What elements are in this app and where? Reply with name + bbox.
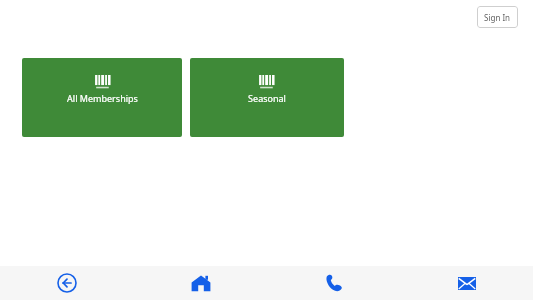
button[interactable]: Seasonal — [190, 58, 344, 137]
button[interactable]: Sign In — [477, 6, 518, 28]
button[interactable]: Call — [267, 266, 400, 300]
button[interactable]: Back — [0, 266, 134, 300]
staticText: Seasonal — [248, 92, 286, 104]
button[interactable]: Mail — [400, 266, 533, 300]
staticText: Sign In — [484, 12, 511, 23]
staticText: All Memberships — [67, 92, 138, 104]
button[interactable]: All Memberships — [22, 58, 182, 137]
button[interactable]: Home — [134, 266, 267, 300]
